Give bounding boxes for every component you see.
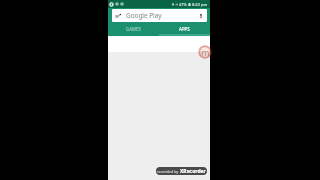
staticText: APPS [179, 26, 190, 32]
staticText: recorded by [157, 169, 180, 174]
staticText: XRecorder [180, 168, 206, 175]
button[interactable]: Screen recorder [198, 45, 212, 59]
staticText: 8:32 pm [192, 2, 208, 7]
button[interactable]: APPS [159, 22, 210, 36]
button[interactable]: GAMES [108, 22, 159, 36]
button[interactable]: Google Play [112, 9, 207, 22]
other: Voice search [198, 13, 204, 19]
staticText: m [201, 46, 210, 58]
staticText: Google Play [126, 11, 162, 20]
staticText: GAMES [126, 26, 141, 32]
staticText: 47% [179, 2, 187, 7]
